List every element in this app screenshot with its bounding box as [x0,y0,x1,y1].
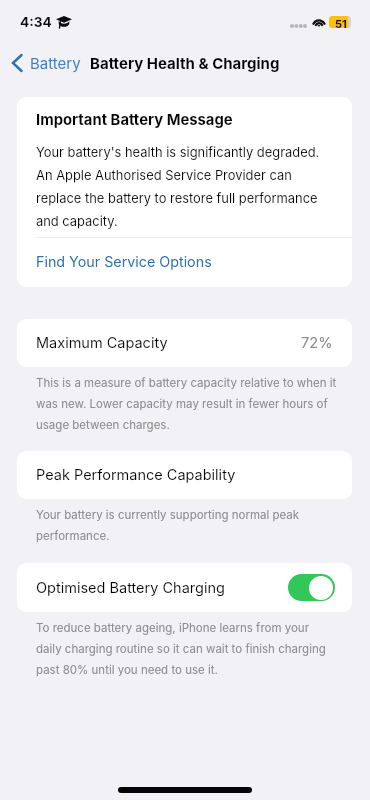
staticText: Battery Health & Charging [90,54,280,72]
staticText: Find Your Service Options [36,253,212,270]
staticText: Optimised Battery Charging [36,579,225,597]
staticText: Your battery's health is significantly d… [36,138,328,230]
button[interactable]: Peak Performance Capability [17,451,352,499]
staticText: Battery [30,54,81,72]
staticText: This is a measure of battery capacity re… [36,371,341,434]
staticText: 51 [335,17,347,29]
staticText: 4:34 [20,14,52,30]
button[interactable]: Optimised Battery Charging toggle [288,574,335,601]
staticText: Peak Performance Capability [36,466,236,484]
button[interactable]: Find Your Service Options [17,237,352,287]
staticText: To reduce battery ageing, iPhone learns … [36,616,336,679]
staticText: Your battery is currently supporting nor… [36,503,336,545]
staticText: 72% [301,334,333,352]
button[interactable]: Back to Battery [11,50,81,76]
staticText: Maximum Capacity [36,334,168,352]
button[interactable]: Maximum Capacity [17,319,352,367]
staticText: Important Battery Message [36,111,233,129]
